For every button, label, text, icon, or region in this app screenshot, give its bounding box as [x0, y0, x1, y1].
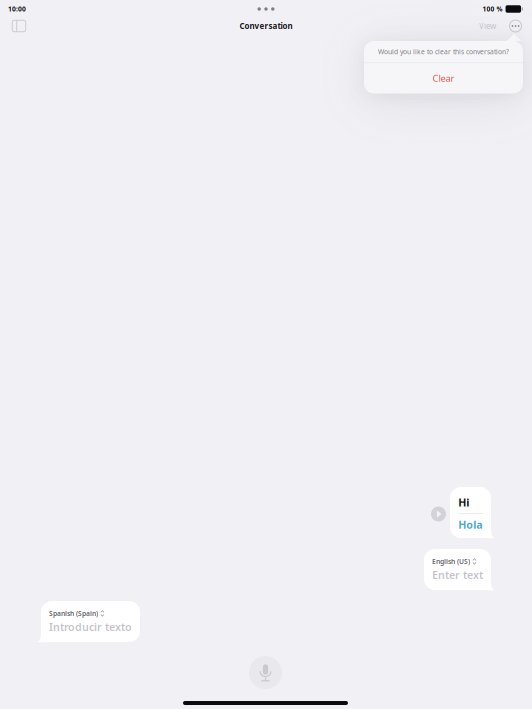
- button[interactable]: Spanish (Spain): [41, 601, 140, 642]
- staticText: Would you like to clear this conversatio…: [378, 47, 509, 56]
- staticText: Enter text: [432, 568, 483, 582]
- staticText: Hola: [458, 517, 482, 532]
- staticText: Clear: [432, 72, 454, 84]
- button[interactable]: View: [479, 13, 496, 39]
- staticText: Hi: [458, 495, 469, 509]
- button[interactable]: Play translation: [429, 505, 447, 523]
- button[interactable]: Show Sidebar: [6, 13, 32, 39]
- staticText: Spanish (Spain): [49, 609, 98, 618]
- button[interactable]: Hi, translated to Hola: [450, 487, 491, 538]
- staticText: Conversation: [239, 21, 292, 31]
- staticText: 10:00: [8, 5, 26, 13]
- staticText: View: [479, 21, 496, 31]
- staticText: 100 %: [482, 5, 502, 13]
- staticText: English (US): [432, 557, 470, 566]
- button[interactable]: Clear: [364, 63, 523, 93]
- button[interactable]: Start recording: [243, 650, 288, 695]
- button[interactable]: English (US): [424, 549, 491, 590]
- button[interactable]: More options: [505, 13, 526, 39]
- staticText: Introducir texto: [49, 620, 132, 634]
